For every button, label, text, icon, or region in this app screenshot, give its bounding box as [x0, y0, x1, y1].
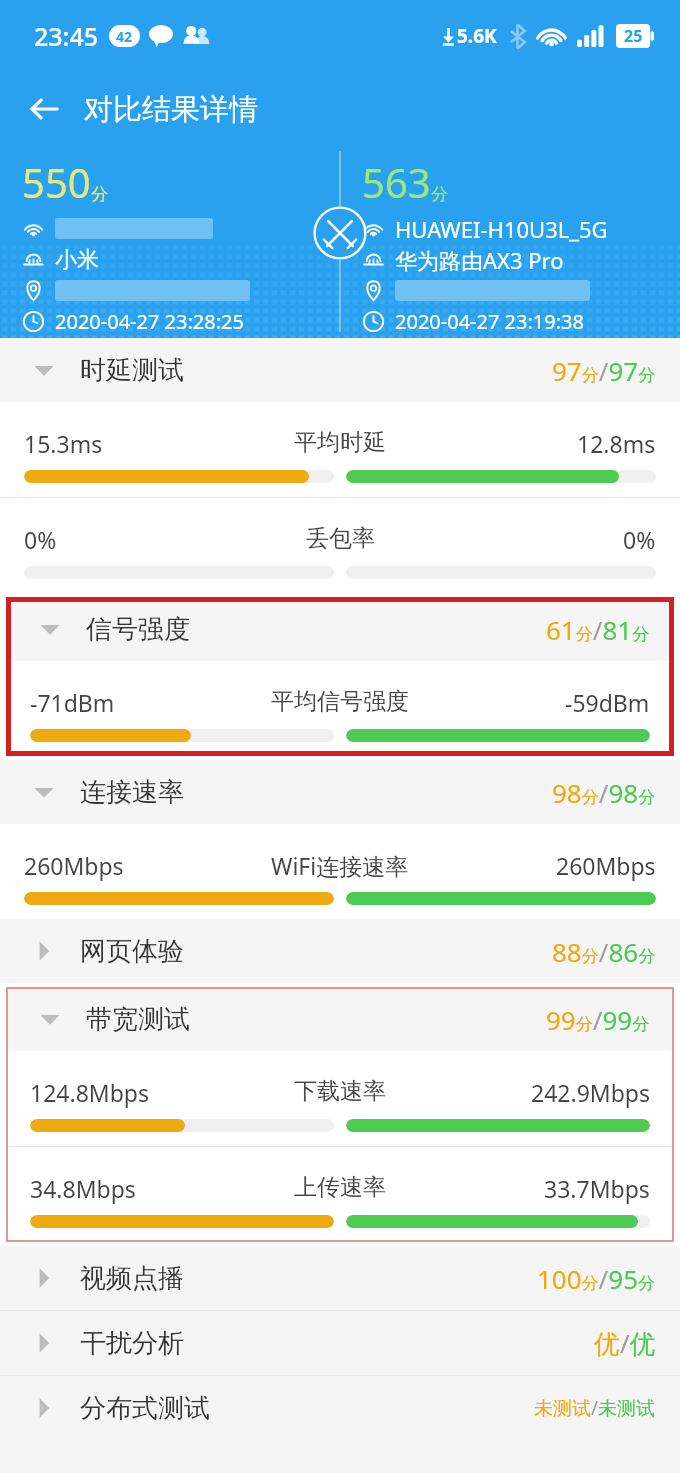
staticText: 丢包率 — [306, 524, 375, 553]
button[interactable]: 时延测试 — [0, 338, 680, 402]
button[interactable]: 15.3ms — [0, 402, 680, 497]
staticText: -71dBm — [30, 687, 115, 718]
staticText: WiFi连接速率 — [271, 850, 409, 881]
button[interactable]: 34.8Mbps — [6, 1147, 674, 1242]
button[interactable]: Back — [16, 80, 74, 138]
staticText: 61分/81分 — [546, 612, 650, 647]
staticText: 12.8ms — [577, 428, 656, 459]
staticText: 98分/98分 — [552, 775, 656, 810]
button[interactable]: 连接速率 — [0, 760, 680, 824]
button[interactable]: 260Mbps — [0, 824, 680, 919]
staticText: 563 — [362, 155, 431, 209]
staticText: 124.8Mbps — [30, 1077, 149, 1108]
staticText: 带宽测试 — [86, 1003, 190, 1036]
staticText: 97分/97分 — [552, 353, 656, 388]
staticText: 视频点播 — [80, 1262, 184, 1295]
staticText: 34.8Mbps — [30, 1173, 136, 1204]
staticText: 下载速率 — [294, 1077, 386, 1106]
staticText: 100分/95分 — [537, 1261, 656, 1296]
staticText: HUAWEI-H10U3L_5G — [395, 214, 608, 244]
button[interactable]: 信号强度 — [6, 597, 674, 661]
button[interactable]: 网页体验 — [0, 919, 680, 983]
staticText: -59dBm — [565, 687, 650, 718]
staticText: 242.9Mbps — [531, 1077, 650, 1108]
staticText: 0% — [24, 524, 57, 555]
staticText: 2020-04-27 23:28:25 — [55, 308, 244, 335]
staticText: 5.6K — [457, 23, 497, 49]
button[interactable]: 视频点播 — [0, 1246, 680, 1310]
staticText: 平均时延 — [294, 428, 386, 457]
staticText: 2020-04-27 23:19:38 — [395, 308, 584, 335]
staticText: 分 — [431, 184, 448, 205]
staticText: 时延测试 — [80, 354, 184, 387]
staticText: 小米 — [55, 246, 99, 274]
staticText: 550 — [22, 155, 91, 209]
staticText: 15.3ms — [24, 428, 103, 459]
button[interactable]: 带宽测试 — [6, 987, 674, 1051]
staticText: 网页体验 — [80, 935, 184, 968]
staticText: 42 — [116, 27, 133, 46]
staticText: 88分/86分 — [552, 934, 656, 969]
staticText: 华为路由AX3 Pro — [395, 245, 564, 275]
staticText: 25 — [624, 25, 643, 47]
staticText: 23:45 — [34, 19, 99, 53]
staticText: 0% — [623, 524, 656, 555]
staticText: 上传速率 — [294, 1173, 386, 1202]
button[interactable]: -71dBm — [6, 661, 674, 756]
staticText: 分布式测试 — [80, 1392, 210, 1425]
staticText: 260Mbps — [24, 850, 124, 881]
button[interactable]: 0% — [0, 498, 680, 593]
staticText: 33.7Mbps — [544, 1173, 650, 1204]
button[interactable]: 分布式测试 — [0, 1376, 680, 1440]
staticText: 对比结果详情 — [84, 91, 258, 128]
staticText: 260Mbps — [556, 850, 656, 881]
staticText: 连接速率 — [80, 776, 184, 809]
staticText: 信号强度 — [86, 613, 190, 646]
staticText: 未测试/未测试 — [534, 1395, 656, 1421]
staticText: 干扰分析 — [80, 1327, 184, 1360]
staticText: 99分/99分 — [546, 1002, 650, 1037]
staticText: 平均信号强度 — [271, 687, 409, 716]
staticText: 优/优 — [594, 1325, 656, 1361]
staticText: 分 — [91, 184, 108, 205]
button[interactable]: 124.8Mbps — [6, 1051, 674, 1146]
button[interactable]: 干扰分析 — [0, 1311, 680, 1375]
